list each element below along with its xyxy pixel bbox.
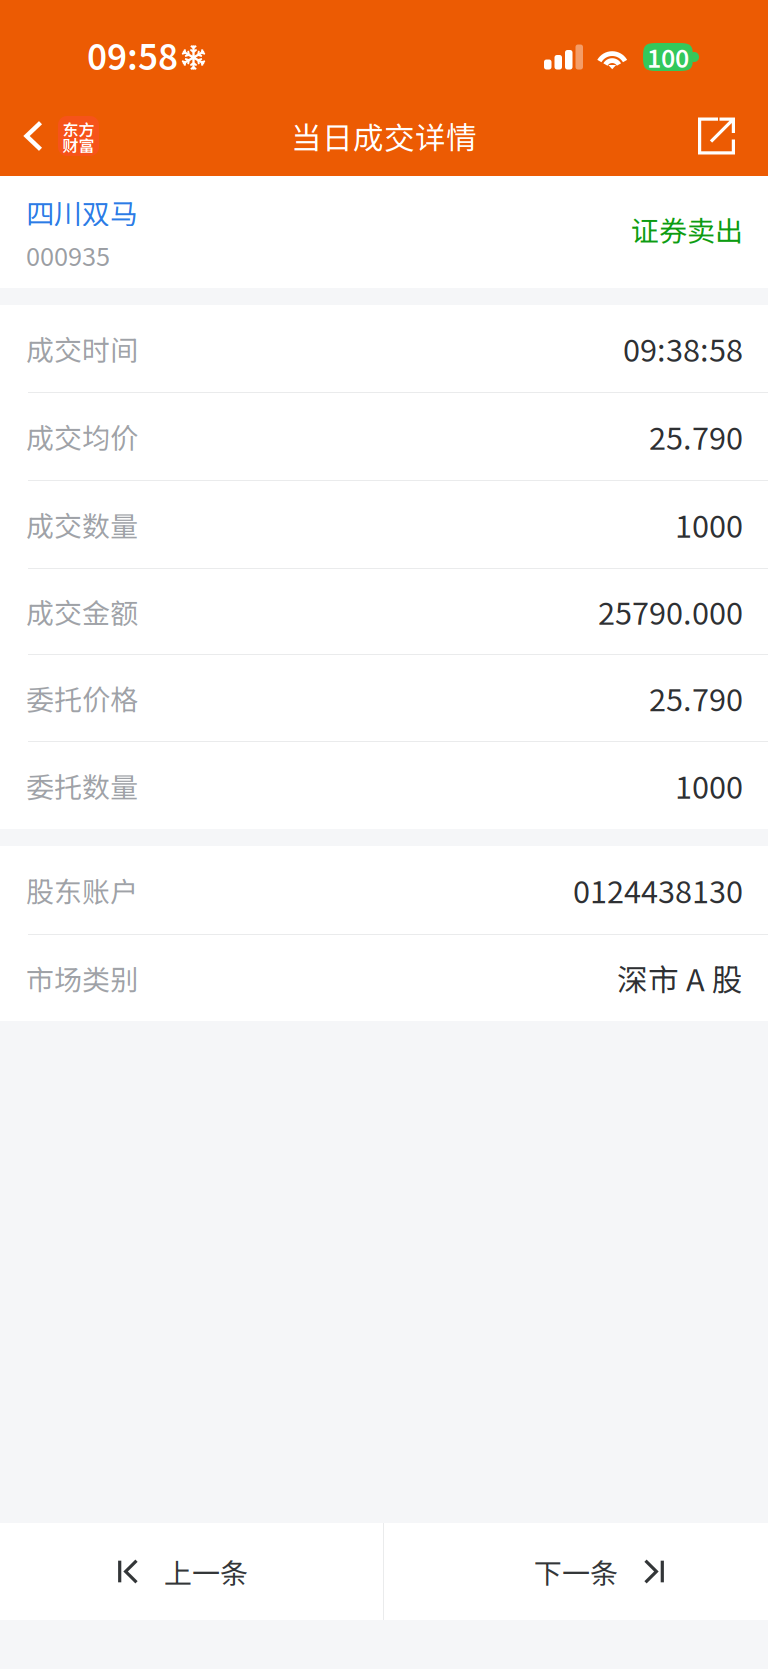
staticText: 市场类别	[26, 958, 138, 998]
staticText: 09:38:58	[623, 326, 743, 371]
staticText: 成交均价	[26, 416, 138, 457]
staticText: 成交金额	[26, 591, 138, 632]
staticText: 证券卖出	[631, 209, 743, 249]
staticText: 股东账户	[26, 870, 138, 910]
staticText: 25790.000	[598, 589, 743, 634]
staticText: 四川双马	[26, 192, 138, 232]
staticText: 1000	[675, 763, 743, 808]
button[interactable]: 下一条	[384, 1523, 768, 1620]
staticText: 成交数量	[26, 504, 138, 545]
staticText: 25.790	[649, 676, 743, 720]
staticText: 上一条	[164, 1551, 248, 1592]
staticText: 东方	[62, 117, 94, 141]
button[interactable]: 分享	[680, 99, 768, 173]
staticText: 下一条	[534, 1551, 618, 1592]
staticText: 25.790	[649, 414, 743, 459]
button[interactable]: 返回	[0, 99, 113, 173]
staticText: 委托数量	[26, 765, 138, 806]
staticText: 0124438130	[573, 868, 743, 912]
staticText: 当日成交详情	[291, 114, 477, 158]
staticText: 财富	[62, 133, 94, 157]
staticText: 1000	[675, 502, 743, 547]
staticText: 09:58	[87, 30, 178, 80]
staticText: 深市 A 股	[617, 956, 743, 1000]
button[interactable]: 上一条	[0, 1523, 383, 1620]
staticText: 成交时间	[26, 328, 138, 369]
staticText: 000935	[26, 237, 110, 273]
staticText: 100	[647, 39, 689, 75]
staticText: 委托价格	[26, 678, 138, 718]
